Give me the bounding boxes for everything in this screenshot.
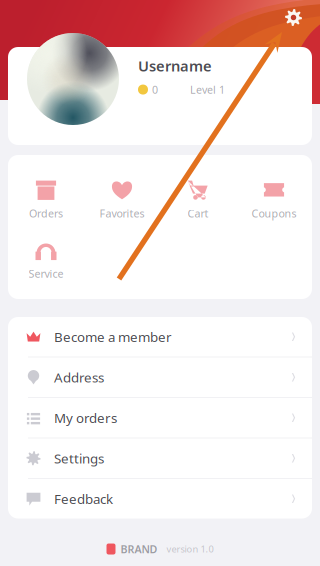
button[interactable]: Settings bbox=[276, 0, 311, 35]
button[interactable]: Favorites bbox=[84, 179, 160, 220]
button[interactable]: My orders bbox=[8, 398, 312, 437]
button[interactable]: Coupons bbox=[236, 179, 312, 220]
button[interactable]: Settings bbox=[8, 438, 312, 478]
staticText: 0 bbox=[152, 82, 158, 97]
staticText: Address bbox=[54, 368, 104, 386]
staticText: Coupons bbox=[251, 206, 296, 220]
staticText: Service bbox=[28, 266, 63, 281]
button[interactable]: Feedback bbox=[8, 479, 312, 518]
staticText: BRAND bbox=[120, 542, 157, 556]
button[interactable]: Cart bbox=[160, 179, 236, 220]
button[interactable]: Address bbox=[8, 357, 312, 397]
staticText: Orders bbox=[29, 206, 63, 220]
button[interactable]: Become a member bbox=[8, 317, 312, 356]
staticText: version 1.0 bbox=[166, 543, 213, 555]
staticText: Level 1 bbox=[190, 82, 225, 97]
staticText: Settings bbox=[54, 449, 104, 467]
button[interactable]: Orders bbox=[8, 179, 84, 220]
staticText: Username bbox=[138, 56, 212, 75]
staticText: Feedback bbox=[54, 490, 113, 508]
staticText: Cart bbox=[187, 206, 208, 220]
staticText: My orders bbox=[54, 409, 117, 427]
staticText: Become a member bbox=[54, 328, 172, 346]
button[interactable]: Service bbox=[8, 239, 84, 281]
staticText: Favorites bbox=[99, 206, 144, 220]
